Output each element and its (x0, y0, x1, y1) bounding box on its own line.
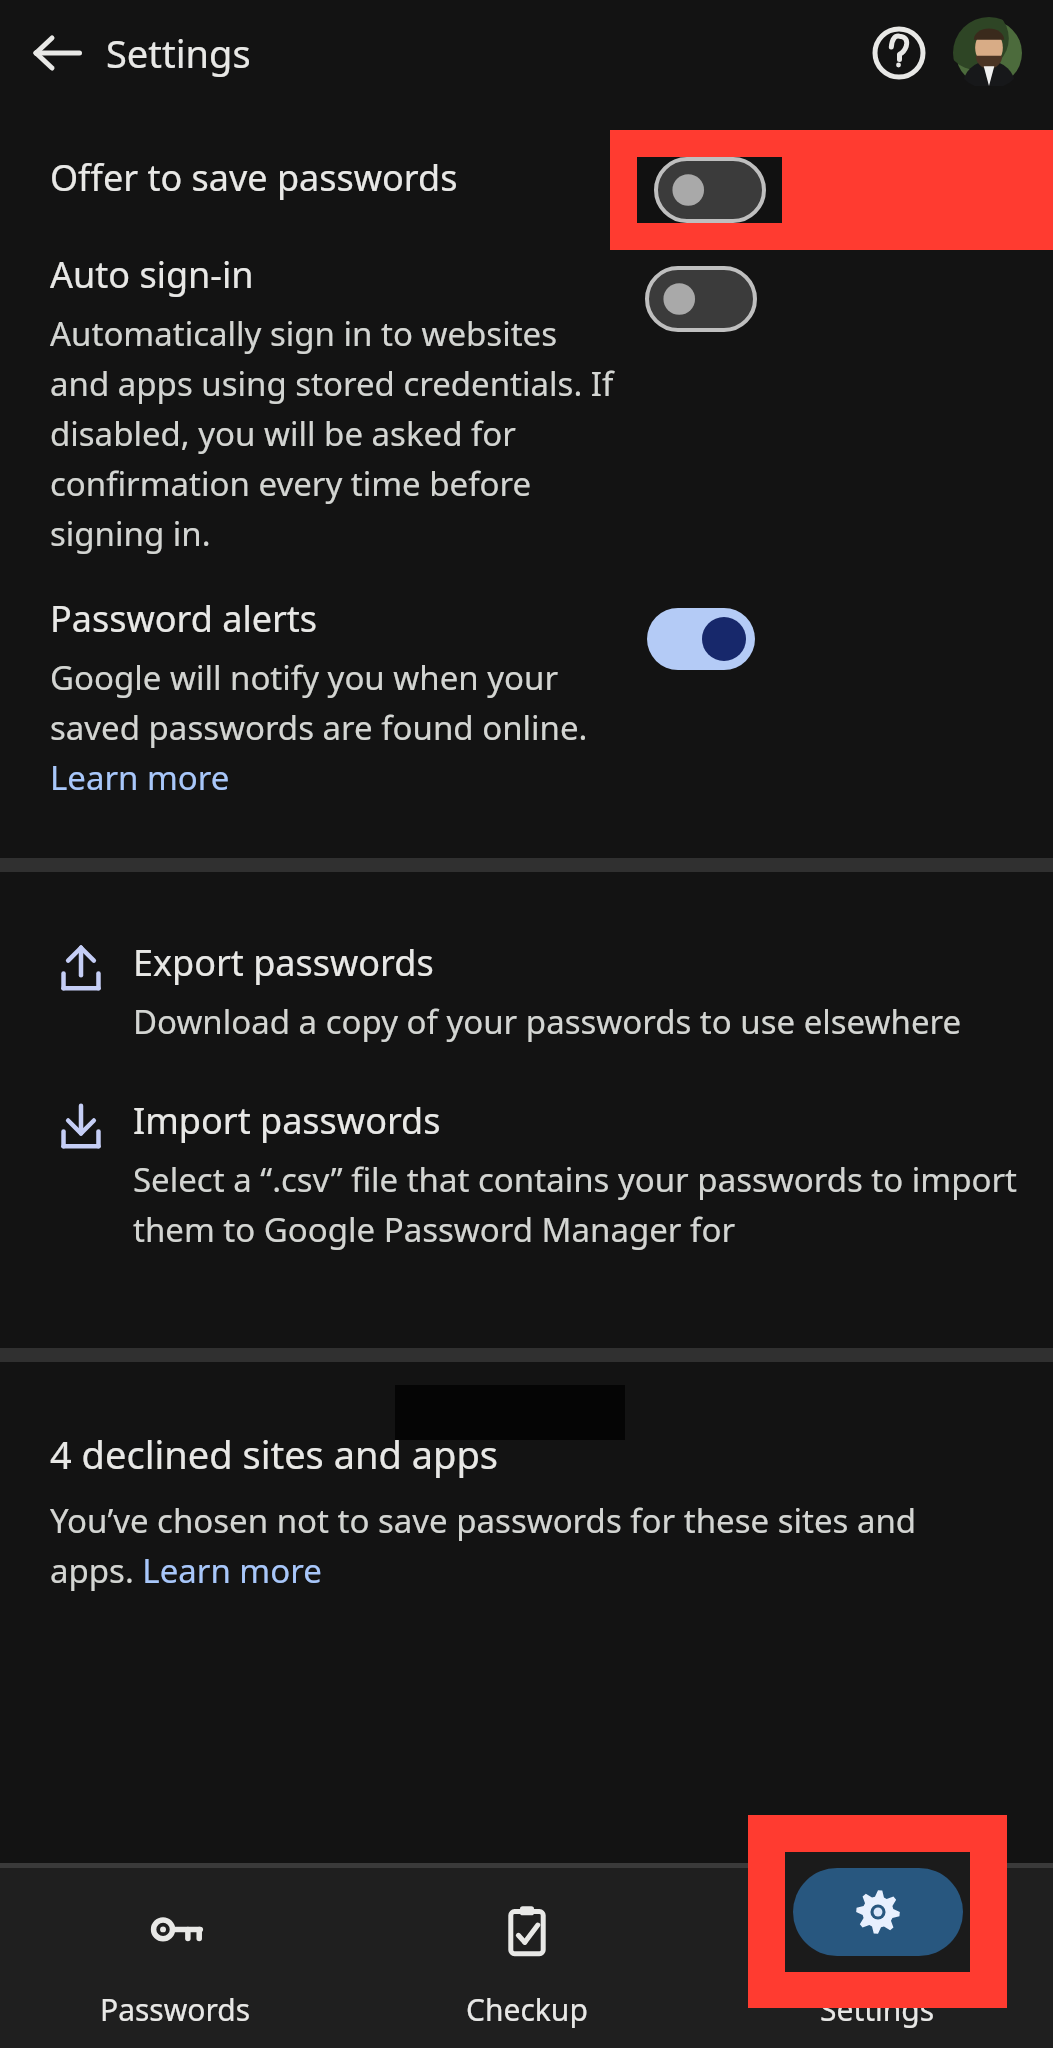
button[interactable]: Account (953, 17, 1025, 89)
button[interactable]: Checkup (351, 1868, 702, 2048)
button[interactable]: Settings (702, 1868, 1053, 2048)
staticText: Settings (106, 27, 251, 79)
button[interactable]: Settings (793, 1868, 963, 1956)
staticText: Passwords (100, 1989, 251, 2030)
staticText: Offer to save passwords (50, 153, 647, 202)
staticText: Select a “.csv” file that contains your … (133, 1157, 1018, 1252)
staticText: Auto sign-in (50, 250, 254, 299)
button[interactable]: Help (863, 17, 935, 89)
staticText: You’ve chosen not to save passwords for … (50, 1498, 1008, 1593)
staticText: Export passwords (133, 938, 434, 987)
staticText: Settings (820, 1989, 935, 2030)
button[interactable]: Password alerts (0, 594, 1053, 800)
button[interactable]: Toggle off (647, 147, 755, 209)
button[interactable]: Toggle on (647, 608, 755, 670)
button[interactable]: Offer to save passwords (0, 105, 1053, 250)
button[interactable]: Toggle off (647, 268, 755, 330)
button[interactable]: Auto sign-in (0, 250, 1053, 556)
button[interactable]: Back (22, 18, 92, 88)
staticText: Automatically sign in to websites and ap… (50, 311, 623, 556)
button[interactable]: Passwords (0, 1868, 351, 2048)
staticText: Password alerts (50, 594, 318, 643)
button[interactable]: Import passwords (0, 1096, 1053, 1252)
staticText: 4 declined sites and apps (50, 1428, 498, 1480)
staticText: Import passwords (133, 1096, 441, 1145)
button[interactable]: Export passwords (0, 938, 1053, 1044)
staticText: Google will notify you when your saved p… (50, 655, 623, 800)
staticText: Download a copy of your passwords to use… (133, 999, 962, 1044)
staticText: Checkup (466, 1989, 588, 2030)
button[interactable]: Toggle off (656, 159, 764, 221)
